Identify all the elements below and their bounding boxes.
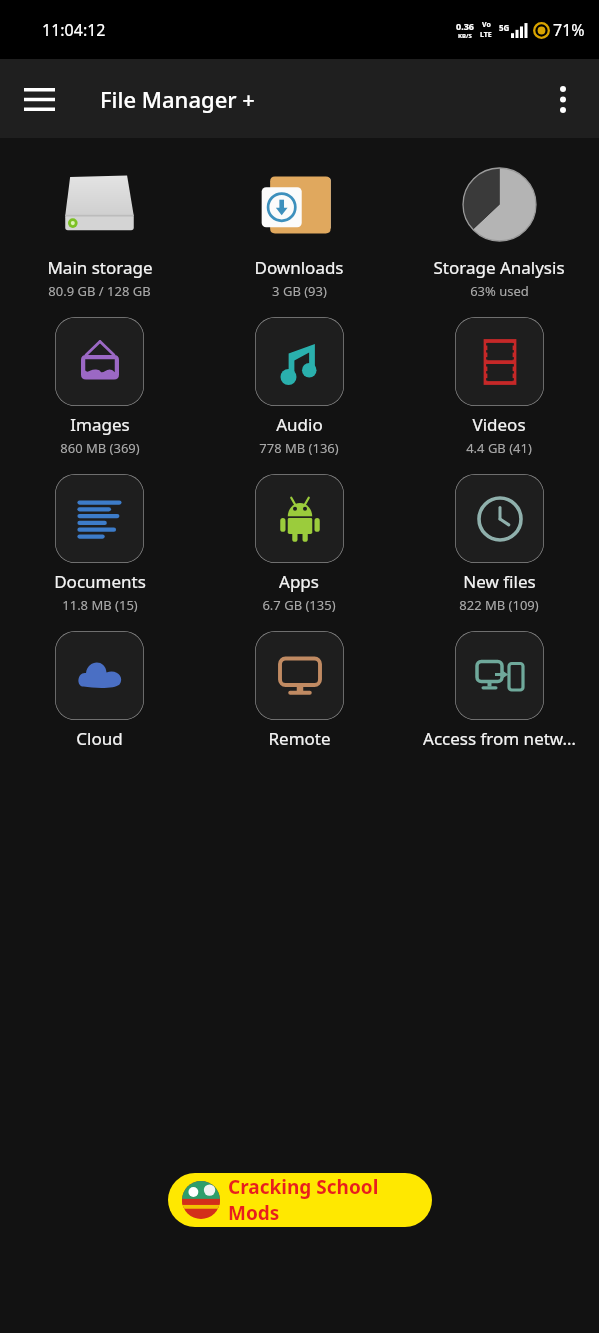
- staticText: Vo: [482, 20, 491, 30]
- button[interactable]: Downloads: [201, 152, 397, 309]
- button[interactable]: Images: [2, 309, 197, 466]
- staticText: Images: [70, 413, 130, 436]
- button[interactable]: Access from netw…: [401, 623, 597, 778]
- staticText: Videos: [472, 413, 526, 436]
- staticText: Cracking School Mods: [228, 1174, 418, 1226]
- staticText: 778 MB (136): [259, 439, 339, 457]
- staticText: 80.9 GB / 128 GB: [48, 282, 151, 300]
- staticText: Documents: [54, 570, 146, 593]
- staticText: 11.8 MB (15): [62, 596, 138, 614]
- staticText: LTE: [480, 30, 492, 40]
- button[interactable]: Documents: [2, 466, 197, 623]
- staticText: New files: [463, 570, 536, 593]
- button[interactable]: Main storage: [2, 152, 197, 309]
- staticText: Remote: [268, 727, 331, 750]
- staticText: Downloads: [254, 256, 344, 279]
- staticText: File Manager +: [100, 84, 255, 114]
- staticText: Storage Analysis: [433, 256, 565, 279]
- staticText: 11:04:12: [42, 19, 106, 41]
- staticText: Audio: [276, 413, 323, 436]
- staticText: 63% used: [470, 282, 529, 300]
- staticText: Access from netw…: [423, 727, 576, 750]
- staticText: 71%: [553, 19, 585, 41]
- staticText: 4.4 GB (41): [466, 439, 532, 457]
- button[interactable]: Cracking School Mods: [168, 1173, 432, 1227]
- staticText: 822 MB (109): [459, 596, 539, 614]
- button[interactable]: Open navigation menu: [8, 68, 70, 130]
- staticText: 6.7 GB (135): [262, 596, 336, 614]
- button[interactable]: Apps: [201, 466, 397, 623]
- staticText: Apps: [279, 570, 319, 593]
- staticText: KB/S: [458, 32, 472, 40]
- button[interactable]: Videos: [401, 309, 597, 466]
- staticText: Main storage: [47, 256, 153, 279]
- button[interactable]: Remote: [201, 623, 397, 778]
- button[interactable]: Cloud: [2, 623, 197, 778]
- staticText: 3 GB (93): [272, 282, 327, 300]
- staticText: 0.36: [456, 20, 474, 32]
- staticText: 5G: [499, 22, 510, 33]
- button[interactable]: New files: [401, 466, 597, 623]
- button[interactable]: More options: [535, 71, 591, 127]
- staticText: 860 MB (369): [60, 439, 140, 457]
- button[interactable]: Audio: [201, 309, 397, 466]
- staticText: Cloud: [76, 727, 123, 750]
- button[interactable]: Storage Analysis: [401, 152, 597, 309]
